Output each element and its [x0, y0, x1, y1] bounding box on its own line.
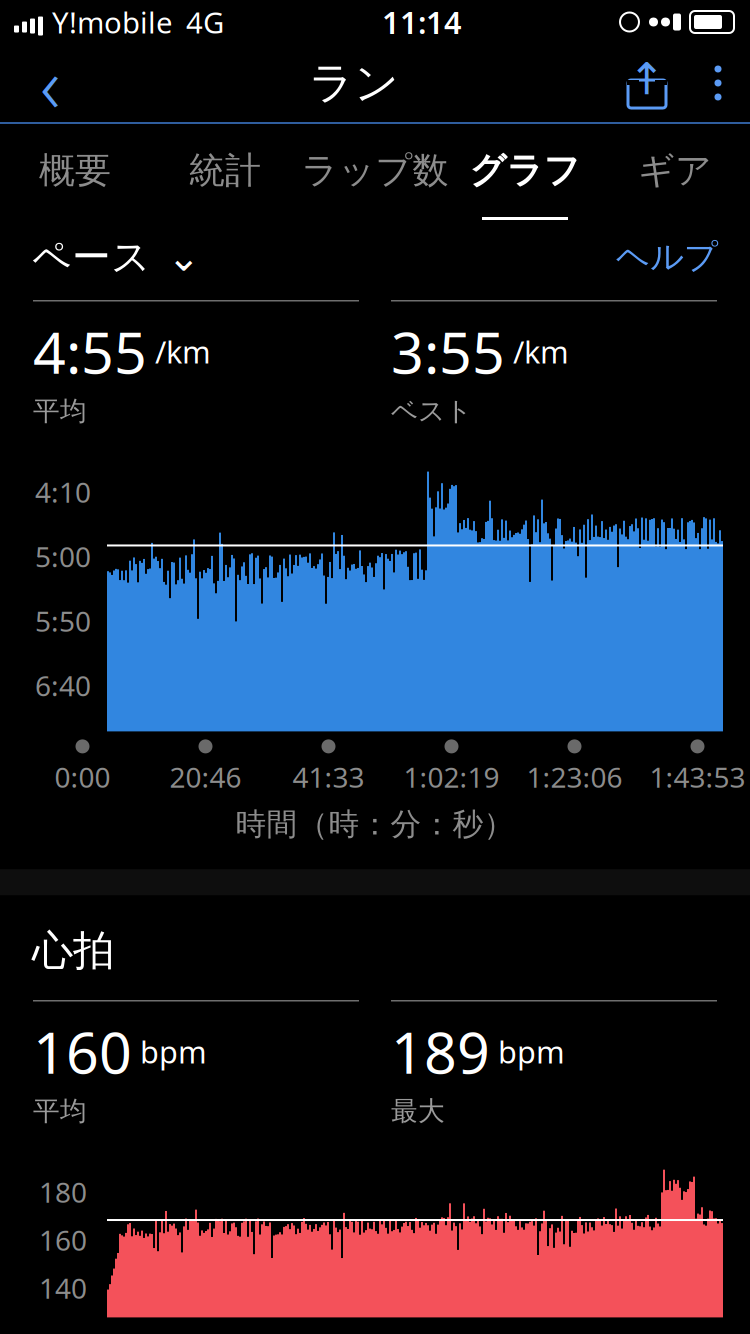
- staticText: 189: [391, 1013, 490, 1090]
- staticText: ↑: [628, 54, 665, 104]
- staticText: ペース: [32, 233, 151, 281]
- button[interactable]: 共有: [608, 44, 686, 122]
- staticText: bpm: [140, 1031, 207, 1072]
- staticText: 11:14: [382, 2, 462, 42]
- button[interactable]: 戻る: [0, 44, 100, 122]
- staticText: ⌄: [167, 234, 201, 280]
- staticText: 160: [33, 1013, 132, 1090]
- staticText: 160: [39, 1221, 87, 1259]
- staticText: ‹: [40, 32, 60, 134]
- staticText: Y!mobile: [52, 2, 173, 41]
- staticText: /km: [513, 331, 569, 372]
- staticText: ヘルプ: [616, 236, 718, 277]
- staticText: 最大: [391, 1095, 445, 1127]
- staticText: 時間（時：分：秒）: [235, 806, 514, 843]
- staticText: 20:46: [169, 758, 241, 796]
- staticText: 4G: [186, 2, 224, 41]
- staticText: 140: [39, 1269, 87, 1307]
- button[interactable]: 統計: [150, 124, 300, 228]
- staticText: 4:10: [35, 473, 91, 511]
- button[interactable]: グラフ: [450, 124, 600, 228]
- staticText: 1:02:19: [403, 758, 499, 796]
- staticText: 3:55: [391, 313, 505, 390]
- staticText: 5:50: [35, 602, 91, 640]
- staticText: 41:33: [292, 758, 364, 796]
- staticText: 平均: [33, 1095, 87, 1127]
- staticText: 1:23:06: [526, 758, 622, 796]
- staticText: 統計: [189, 148, 261, 193]
- staticText: 平均: [33, 395, 87, 427]
- button[interactable]: ギア: [600, 124, 750, 228]
- button[interactable]: ラップ数: [300, 124, 450, 228]
- staticText: ラン: [309, 56, 399, 110]
- staticText: /km: [155, 331, 211, 372]
- staticText: bpm: [498, 1031, 565, 1072]
- staticText: 5:00: [35, 538, 91, 575]
- staticText: ラップ数: [301, 148, 448, 193]
- button[interactable]: ヘルプ: [584, 229, 750, 285]
- staticText: 6:40: [35, 667, 91, 704]
- staticText: 概要: [39, 148, 111, 193]
- staticText: 4:55: [33, 313, 147, 390]
- staticText: 心拍: [32, 925, 114, 976]
- staticText: 0:00: [54, 758, 110, 796]
- button[interactable]: その他のオプション: [686, 44, 750, 122]
- staticText: 180: [39, 1173, 87, 1211]
- staticText: 1:43:53: [649, 758, 745, 796]
- button[interactable]: ペース: [0, 229, 221, 285]
- staticText: ギア: [638, 148, 712, 193]
- staticText: グラフ: [469, 148, 580, 193]
- staticText: ベスト: [391, 395, 472, 427]
- button[interactable]: 概要: [0, 124, 150, 228]
